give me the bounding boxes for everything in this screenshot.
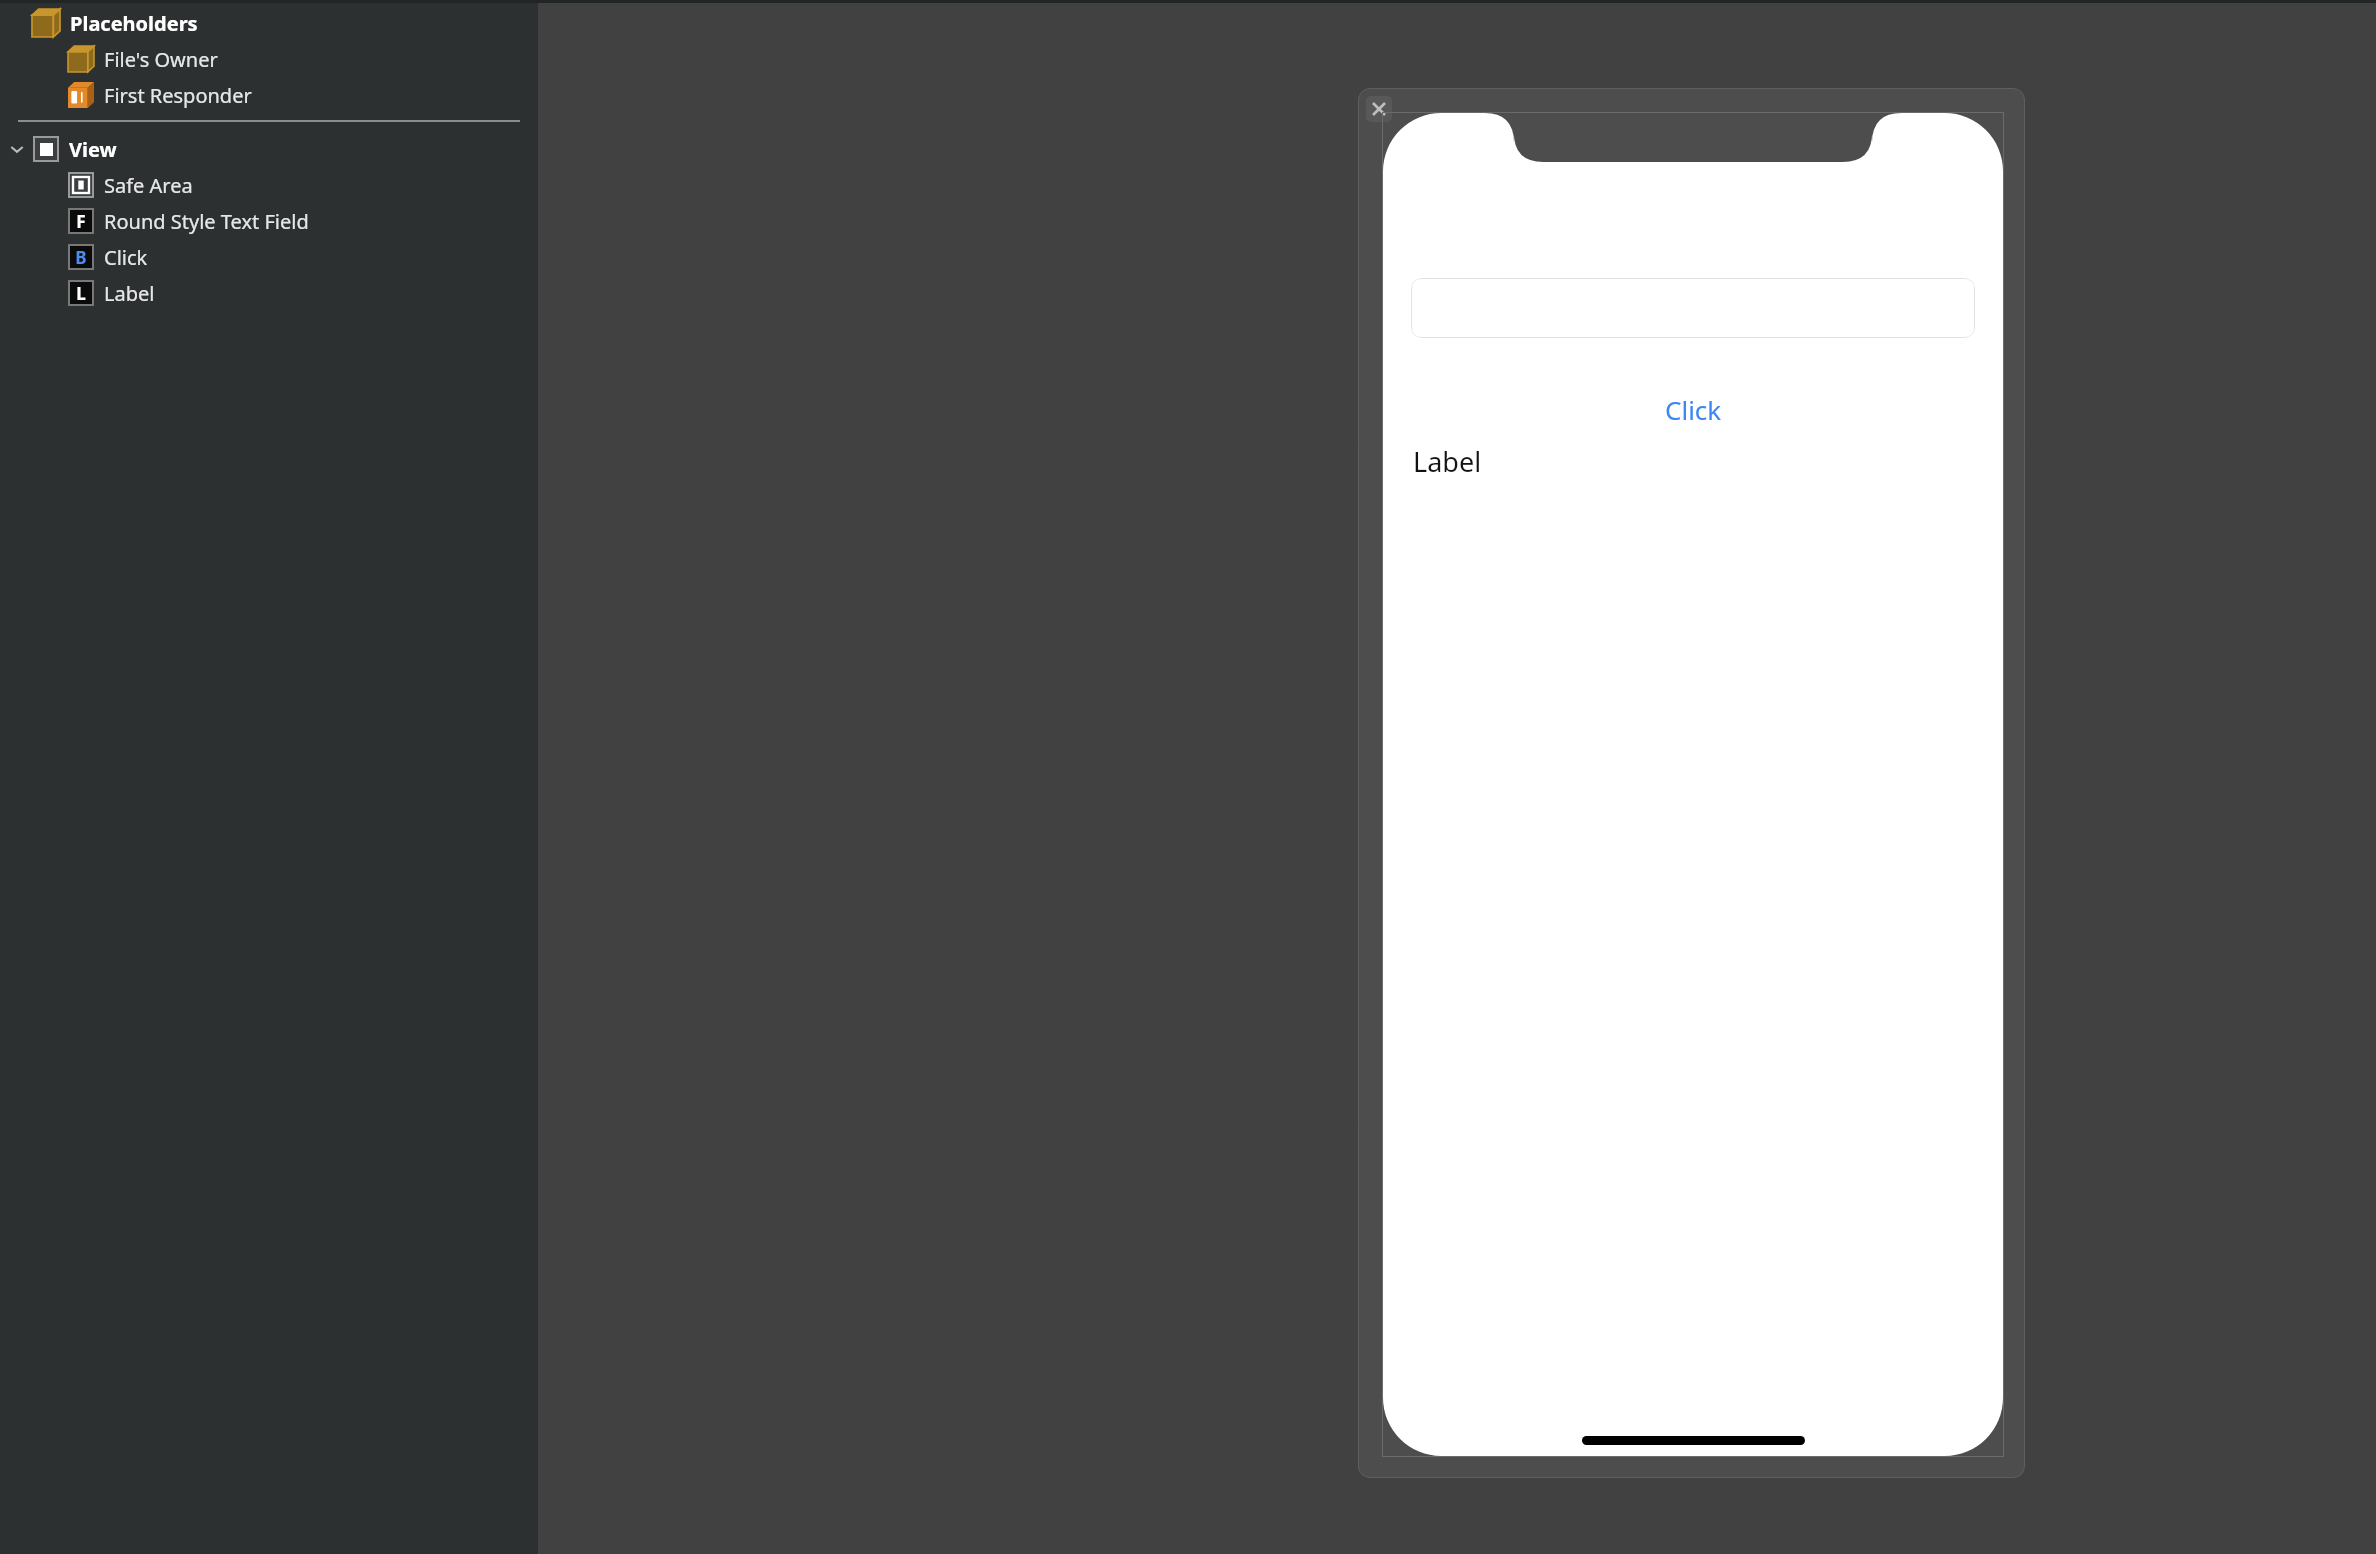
staticText: Click	[1665, 392, 1722, 427]
button[interactable]: Close	[1366, 96, 1392, 122]
button[interactable]: F	[0, 203, 538, 239]
staticText: Placeholders	[70, 10, 198, 37]
staticText: View	[69, 136, 117, 163]
staticText: F	[76, 210, 86, 233]
button[interactable]: Click	[1383, 385, 2003, 433]
button[interactable]: Label	[1413, 440, 1482, 482]
button[interactable]: View	[0, 131, 538, 167]
staticText: B	[75, 246, 87, 269]
staticText: L	[76, 282, 86, 305]
staticText: First Responder	[104, 82, 252, 109]
staticText: Round Style Text Field	[104, 208, 309, 235]
button[interactable]: Safe Area	[0, 167, 538, 203]
staticText: Label	[1413, 443, 1482, 480]
button[interactable]: L	[0, 275, 538, 311]
button[interactable]: First Responder	[0, 77, 538, 113]
staticText: Safe Area	[104, 172, 193, 199]
staticText: File's Owner	[104, 46, 218, 73]
button[interactable]: Placeholders	[0, 5, 538, 41]
button[interactable]: Round Style Text Field	[1411, 278, 1975, 338]
staticText: Click	[104, 244, 148, 271]
button[interactable]: File's Owner	[0, 41, 538, 77]
button[interactable]: B	[0, 239, 538, 275]
staticText: Label	[104, 280, 155, 307]
